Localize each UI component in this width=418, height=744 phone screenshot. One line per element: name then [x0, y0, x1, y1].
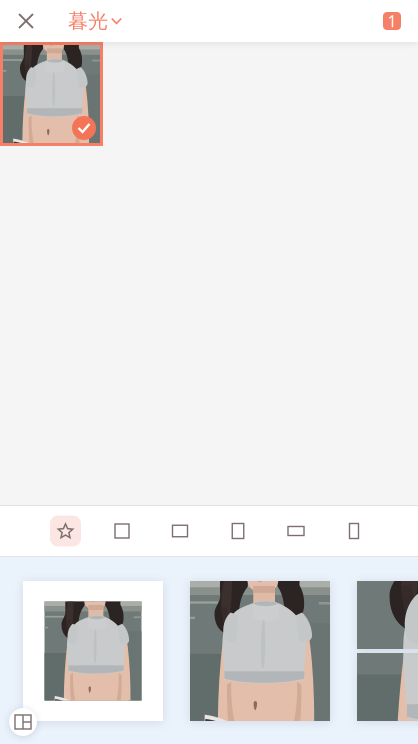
button[interactable]: 1 to 1	[105, 514, 139, 548]
button[interactable]: 1 selected	[383, 0, 418, 42]
button[interactable]: Close	[0, 0, 40, 42]
button[interactable]: 3 to 4	[221, 514, 255, 548]
button[interactable]: Framed template	[23, 581, 163, 721]
staticText: 暮光	[68, 9, 108, 33]
button[interactable]: 9 to 16	[337, 514, 371, 548]
button[interactable]: Selected photo	[0, 42, 103, 146]
button[interactable]: Split template	[357, 581, 418, 721]
button[interactable]: Change layout	[9, 708, 37, 736]
button[interactable]: Freeform	[50, 515, 81, 546]
button[interactable]: Full bleed template	[190, 581, 330, 721]
staticText: 1	[387, 10, 396, 32]
button[interactable]: 4 to 3	[163, 514, 197, 548]
button[interactable]: 暮光	[40, 0, 132, 42]
button[interactable]: 16 to 9	[279, 514, 313, 548]
